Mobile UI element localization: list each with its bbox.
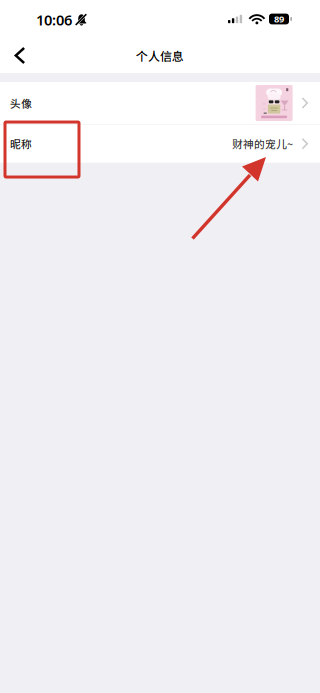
staticText: 个人信息: [136, 47, 184, 64]
staticText: 89: [274, 13, 284, 25]
staticText: 财神的宠儿~: [232, 136, 293, 151]
button[interactable]: 头像: [0, 82, 320, 124]
staticText: 昵称: [10, 136, 32, 151]
button[interactable]: Back: [0, 38, 40, 73]
staticText: 10:06: [36, 10, 72, 30]
button[interactable]: 昵称: [0, 125, 320, 163]
staticText: 头像: [10, 95, 32, 111]
